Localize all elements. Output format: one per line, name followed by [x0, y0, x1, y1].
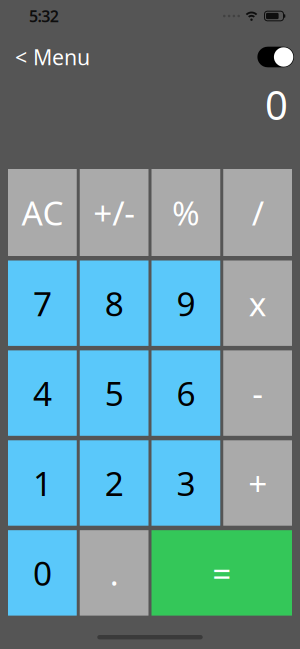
staticText: x: [249, 281, 267, 325]
button[interactable]: 6: [151, 350, 220, 436]
button[interactable]: 9: [151, 260, 220, 346]
button[interactable]: 5: [80, 350, 149, 436]
staticText: 9: [176, 281, 195, 325]
button[interactable]: AC: [8, 169, 77, 256]
staticText: +: [248, 461, 267, 505]
staticText: 4: [33, 371, 52, 415]
button[interactable]: Toggle: [257, 47, 294, 67]
staticText: /: [252, 190, 264, 235]
button[interactable]: 8: [80, 260, 149, 346]
button[interactable]: -: [223, 350, 292, 436]
button[interactable]: .: [80, 530, 149, 616]
button[interactable]: x: [223, 260, 292, 346]
staticText: < Menu: [15, 43, 90, 71]
staticText: 7: [33, 281, 52, 325]
button[interactable]: < Menu: [15, 43, 90, 71]
button[interactable]: 2: [80, 440, 149, 526]
button[interactable]: /: [223, 169, 292, 256]
staticText: =: [212, 551, 231, 595]
staticText: %: [172, 190, 200, 235]
button[interactable]: 1: [8, 440, 77, 526]
staticText: AC: [21, 190, 63, 235]
button[interactable]: 3: [151, 440, 220, 526]
staticText: 2: [105, 461, 124, 505]
button[interactable]: +: [223, 440, 292, 526]
staticText: -: [252, 371, 263, 415]
staticText: 1: [33, 461, 52, 505]
staticText: 5: [105, 371, 124, 415]
button[interactable]: %: [151, 169, 220, 256]
button[interactable]: =: [151, 530, 292, 616]
button[interactable]: 4: [8, 350, 77, 436]
staticText: .: [110, 551, 119, 595]
button[interactable]: +/-: [80, 169, 149, 256]
staticText: 0: [265, 78, 288, 131]
staticText: +/-: [93, 190, 135, 235]
staticText: 6: [176, 371, 195, 415]
staticText: 0: [33, 551, 52, 595]
button[interactable]: 0: [8, 530, 77, 616]
staticText: 3: [176, 461, 195, 505]
staticText: 5:32: [29, 5, 59, 27]
button[interactable]: 7: [8, 260, 77, 346]
staticText: 8: [105, 281, 124, 325]
